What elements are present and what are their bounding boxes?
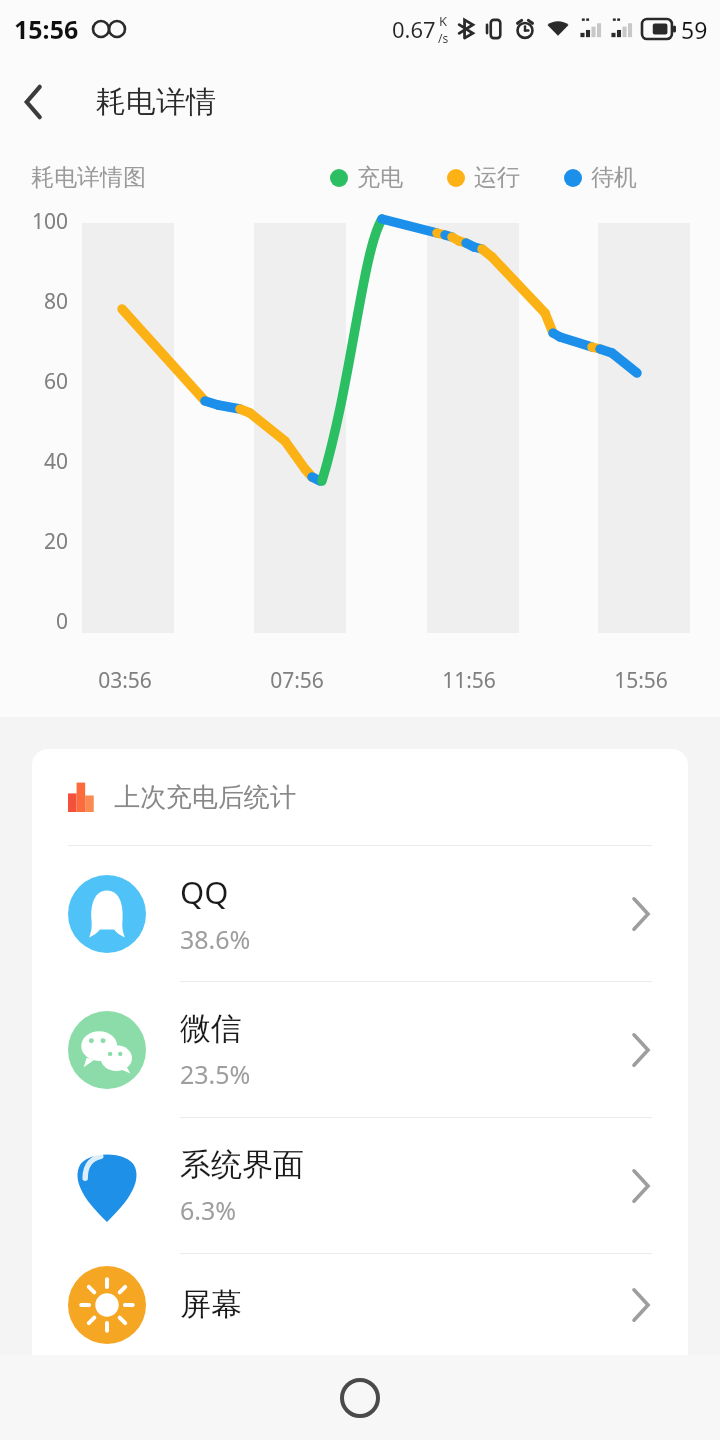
staticText: 6.3% [180, 1193, 237, 1227]
button[interactable]: QQ [32, 846, 688, 982]
staticText: 100 [31, 207, 68, 236]
staticText: 07:56 [270, 666, 324, 695]
staticText: 11:56 [442, 666, 496, 695]
staticText: 0.67 [392, 14, 436, 44]
staticText: 15:56 [14, 12, 79, 46]
staticText: 38.6% [180, 922, 251, 956]
staticText: 80 [43, 287, 68, 316]
staticText: 0 [55, 607, 68, 636]
staticText: 59 [681, 14, 708, 45]
staticText: 20 [43, 527, 68, 556]
button[interactable]: 微信 [32, 982, 688, 1118]
staticText: 系统界面 [180, 1145, 304, 1184]
staticText: 上次充电后统计 [114, 781, 296, 814]
staticText: 60 [43, 367, 68, 396]
staticText: 充电 [357, 163, 403, 192]
staticText: 待机 [591, 163, 637, 192]
staticText: 03:56 [98, 666, 152, 695]
button[interactable]: 系统界面 [32, 1118, 688, 1254]
staticText: 23.5% [180, 1057, 251, 1091]
staticText: 15:56 [614, 666, 668, 695]
staticText: 耗电详情 [96, 83, 216, 121]
button[interactable]: Home [318, 1356, 402, 1440]
button[interactable]: Back [0, 68, 68, 136]
button[interactable]: 屏幕 [32, 1254, 688, 1355]
staticText: 40 [43, 447, 68, 476]
staticText: 微信 [180, 1009, 242, 1048]
staticText: K [439, 12, 448, 30]
staticText: /s [438, 30, 449, 46]
staticText: 运行 [474, 163, 520, 192]
staticText: QQ [180, 871, 229, 913]
staticText: 耗电详情图 [31, 163, 146, 192]
staticText: 屏幕 [180, 1285, 242, 1324]
